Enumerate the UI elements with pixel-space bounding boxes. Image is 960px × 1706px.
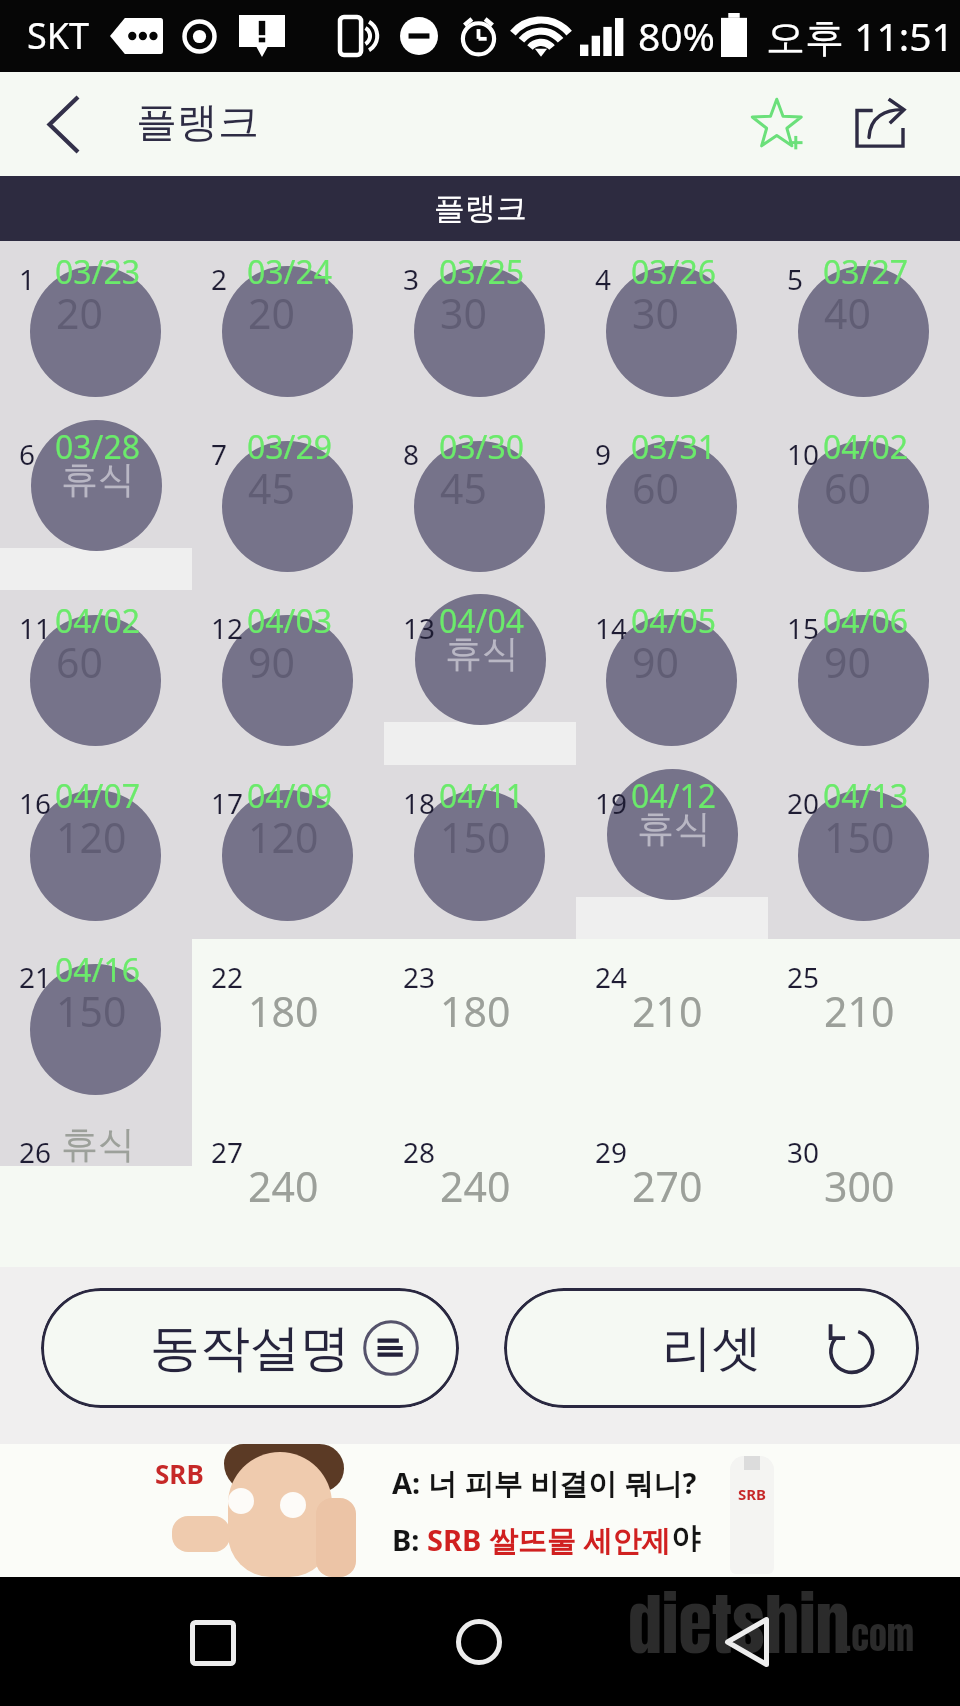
staticText: SKT [27, 11, 90, 60]
staticText: 150 [440, 809, 511, 865]
staticText: 30 [632, 285, 679, 341]
staticText: 18 [403, 784, 436, 822]
staticText: 04/07 [55, 774, 141, 818]
staticText: 휴식 [61, 456, 135, 503]
staticText: 7 [211, 435, 228, 473]
staticText: 120 [248, 809, 319, 865]
staticText: 22 [211, 958, 244, 996]
staticText: B: [392, 1520, 427, 1559]
staticText: 1 [19, 260, 36, 298]
staticText: 리셋 [662, 1317, 762, 1380]
button[interactable]: Recent apps [157, 1577, 269, 1706]
button[interactable]: 23 [384, 939, 576, 1114]
staticText: 180 [440, 983, 511, 1039]
staticText: 24 [595, 958, 628, 996]
button[interactable]: 18 [384, 765, 576, 940]
staticText: 60 [632, 460, 679, 516]
button[interactable]: 동작설명 [41, 1288, 459, 1408]
staticText: 90 [248, 634, 295, 690]
button[interactable]: 26 [0, 1114, 192, 1267]
button[interactable]: 6 [0, 416, 192, 591]
button[interactable]: 4 [576, 241, 768, 416]
staticText: SRB 쌀뜨물 세안제 [427, 1520, 671, 1560]
staticText: 60 [824, 460, 871, 516]
staticText: 150 [824, 809, 895, 865]
button[interactable]: Share [830, 72, 930, 176]
staticText: 20 [56, 285, 103, 341]
staticText: 80% [638, 9, 716, 62]
staticText: 180 [248, 983, 319, 1039]
button[interactable]: 27 [192, 1114, 384, 1267]
button[interactable]: 8 [384, 416, 576, 591]
staticText: 16 [19, 784, 52, 822]
staticText: 90 [824, 634, 871, 690]
button[interactable]: 11 [0, 590, 192, 765]
staticText: 2 [211, 260, 228, 298]
staticText: 04/05 [631, 599, 717, 643]
staticText: 휴식 [445, 630, 519, 677]
button[interactable]: 10 [768, 416, 960, 591]
button[interactable]: 22 [192, 939, 384, 1114]
staticText: 28 [403, 1133, 436, 1171]
button[interactable]: 2 [192, 241, 384, 416]
button[interactable]: Home [423, 1577, 535, 1706]
button[interactable]: 13 [384, 590, 576, 765]
staticText: 03/24 [247, 250, 333, 294]
staticText: 너 피부 비결이 뭐니? [428, 1463, 697, 1503]
staticText: 3 [403, 260, 420, 298]
staticText: 10 [787, 435, 820, 473]
staticText: 14 [595, 609, 628, 647]
button[interactable]: 24 [576, 939, 768, 1114]
staticText: 6 [19, 435, 36, 473]
staticText: 04/04 [439, 599, 525, 643]
button[interactable]: Add to favorites [724, 74, 834, 178]
staticText: 4 [595, 260, 612, 298]
staticText: 야 [671, 1520, 700, 1557]
staticText: 03/28 [55, 425, 141, 469]
staticText: 04/02 [823, 425, 909, 469]
staticText: 21 [19, 958, 52, 996]
button[interactable]: 29 [576, 1114, 768, 1267]
staticText: .com [843, 1609, 915, 1663]
button[interactable]: 20 [768, 765, 960, 940]
button[interactable]: 14 [576, 590, 768, 765]
staticText: 03/29 [247, 425, 333, 469]
button[interactable]: 리셋 [504, 1288, 919, 1408]
staticText: 240 [248, 1158, 319, 1214]
button[interactable]: 15 [768, 590, 960, 765]
button[interactable]: 19 [576, 765, 768, 940]
staticText: 04/06 [823, 599, 909, 643]
staticText: 03/25 [439, 250, 525, 294]
staticText: 25 [787, 958, 820, 996]
staticText: 플랭크 [434, 189, 527, 228]
button[interactable]: 7 [192, 416, 384, 591]
staticText: 04/16 [55, 948, 141, 992]
button[interactable]: Back [691, 1577, 803, 1706]
button[interactable]: Back [10, 72, 116, 176]
staticText: 휴식 [637, 805, 711, 852]
staticText: 19 [595, 784, 628, 822]
button[interactable]: 17 [192, 765, 384, 940]
staticText: 04/13 [823, 774, 909, 818]
button[interactable]: 12 [192, 590, 384, 765]
staticText: 26 [19, 1133, 52, 1171]
button[interactable]: 9 [576, 416, 768, 591]
button[interactable]: 28 [384, 1114, 576, 1267]
staticText: 210 [632, 983, 703, 1039]
button[interactable]: 5 [768, 241, 960, 416]
button[interactable]: 25 [768, 939, 960, 1114]
button[interactable]: 16 [0, 765, 192, 940]
staticText: 15 [787, 609, 820, 647]
staticText: 30 [787, 1133, 820, 1171]
staticText: 17 [211, 784, 244, 822]
button[interactable]: 1 [0, 241, 192, 416]
button[interactable]: 21 [0, 939, 192, 1114]
button[interactable]: 3 [384, 241, 576, 416]
staticText: 240 [440, 1158, 511, 1214]
staticText: 27 [211, 1133, 244, 1171]
staticText: 13 [403, 609, 436, 647]
staticText: 03/23 [55, 250, 141, 294]
staticText: 04/02 [55, 599, 141, 643]
button[interactable]: 30 [768, 1114, 960, 1267]
staticText: 04/11 [439, 774, 525, 818]
